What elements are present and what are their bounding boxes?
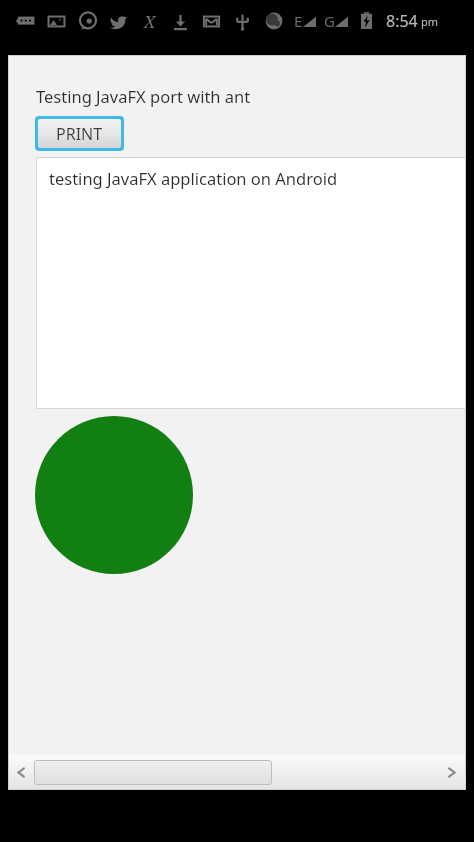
staticText: testing JavaFX application on Android: [49, 167, 338, 189]
staticText: G: [324, 11, 335, 31]
button[interactable]: Scroll left: [8, 755, 34, 790]
staticText: pm: [421, 14, 439, 29]
staticText: PRINT: [56, 123, 103, 145]
button[interactable]: PRINT: [38, 119, 121, 148]
staticText: X: [144, 10, 156, 33]
button[interactable]: Scroll right: [436, 755, 466, 790]
staticText: E: [294, 11, 303, 31]
button[interactable]: Scroll thumb: [34, 760, 272, 785]
staticText: Testing JavaFX port with ant: [36, 85, 251, 107]
button[interactable]: testing JavaFX application on Android: [36, 157, 466, 409]
staticText: 8:54: [386, 10, 418, 32]
